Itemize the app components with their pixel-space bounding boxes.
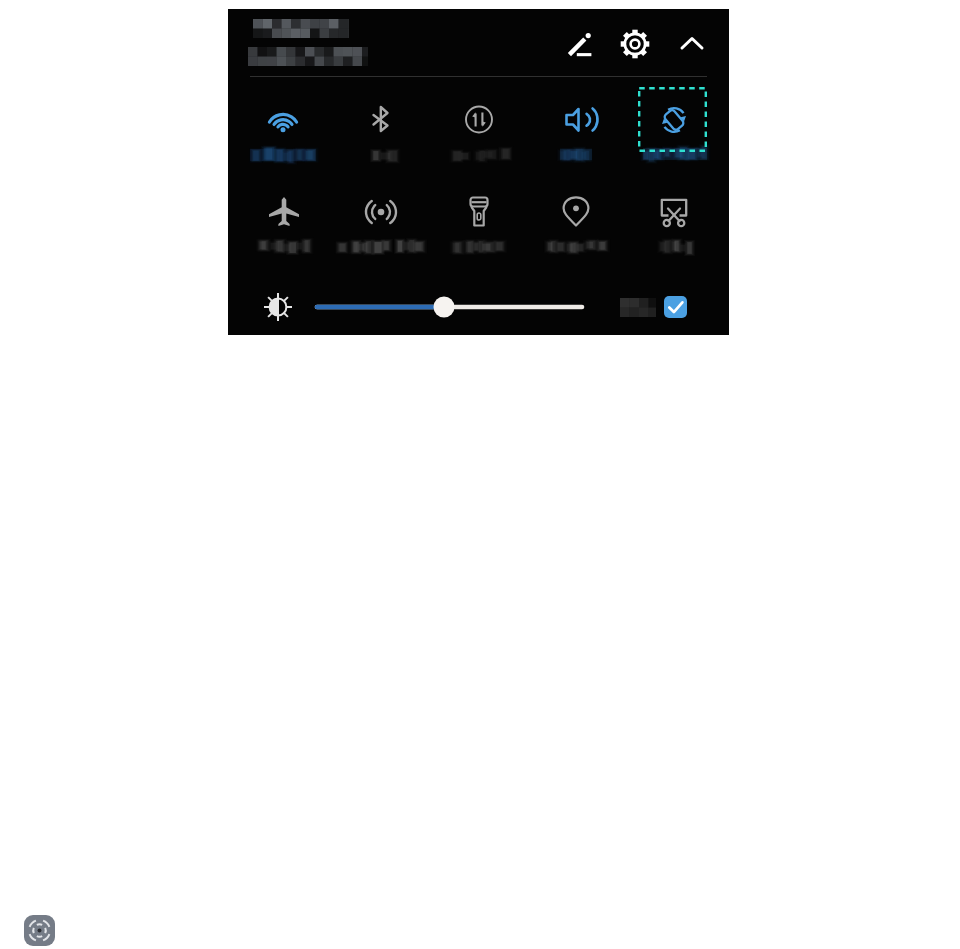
button[interactable]: Settings [613,22,657,66]
button[interactable]: Auto brightness toggle [664,296,687,318]
button[interactable]: Auto brightness [260,289,296,325]
button[interactable]: Quick setting [359,98,403,142]
button[interactable]: Quick setting [261,98,305,142]
button[interactable]: Focus target [24,915,55,946]
button[interactable]: Quick setting [262,190,306,234]
button[interactable]: Quick setting [359,190,403,234]
button[interactable]: Collapse [670,22,714,66]
button[interactable]: Quick setting [652,190,696,234]
button[interactable]: Quick setting [652,98,696,142]
button[interactable]: Brightness slider [311,295,590,319]
button[interactable]: Quick setting [457,98,501,142]
button[interactable]: Edit [558,22,602,66]
button[interactable]: Quick setting [457,190,501,234]
button[interactable]: Quick setting [554,190,598,234]
button[interactable]: Quick setting [554,98,598,142]
